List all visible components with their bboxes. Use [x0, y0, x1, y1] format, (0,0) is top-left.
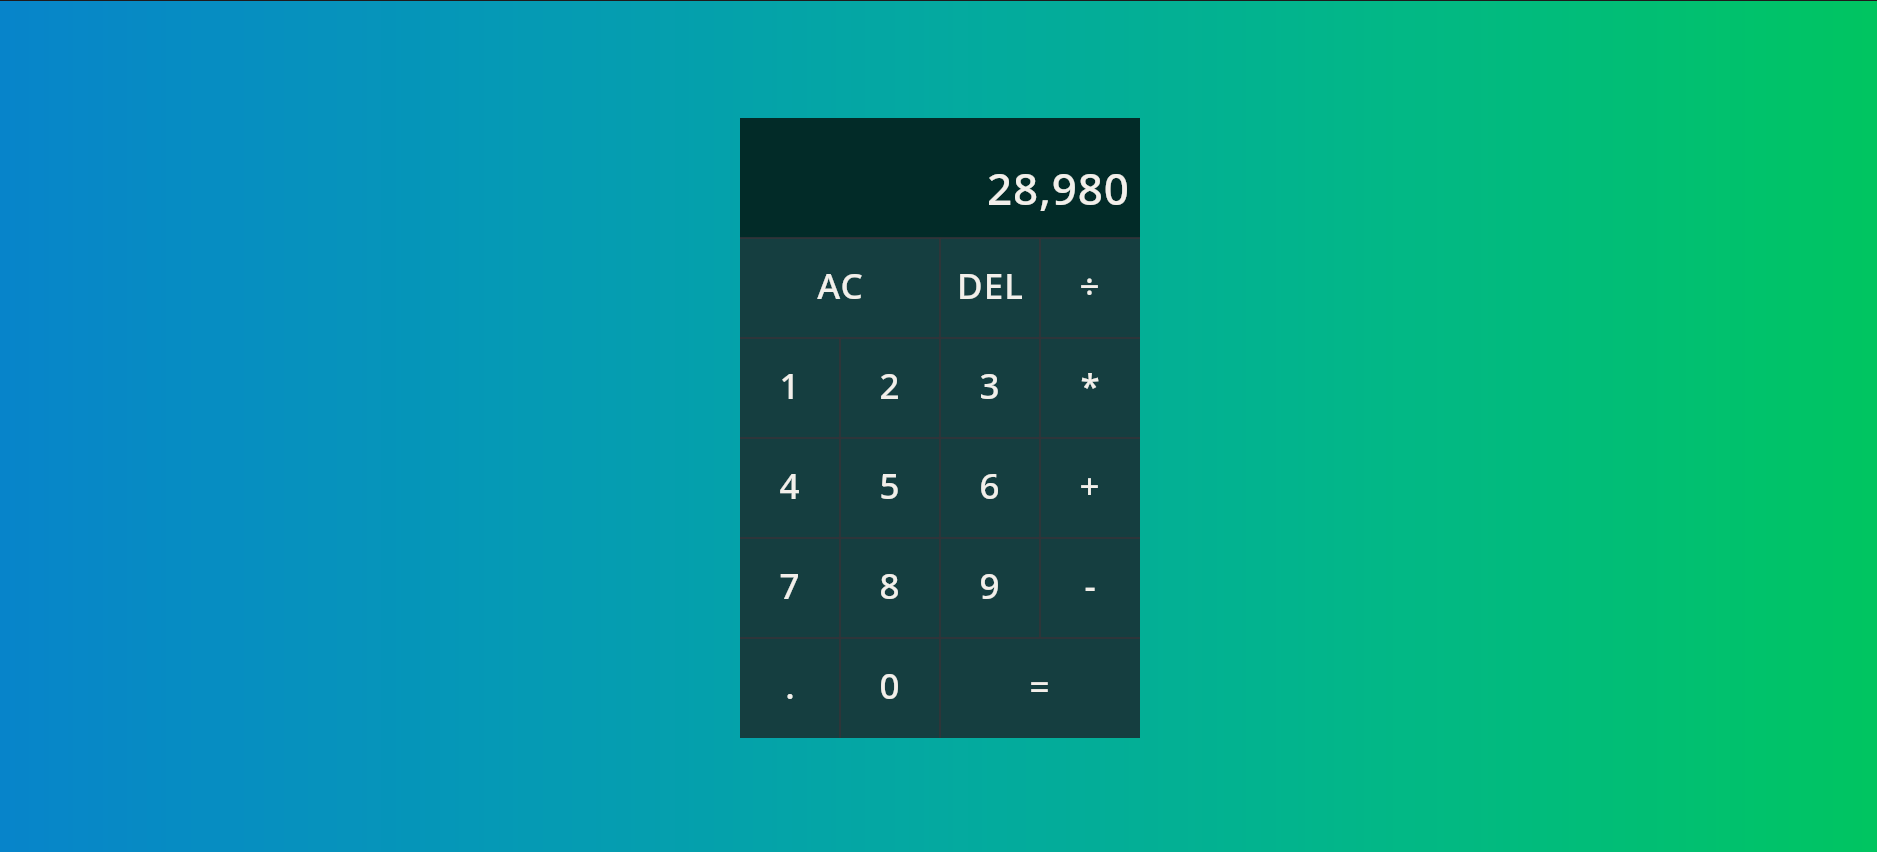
button[interactable]: Multiply — [1040, 338, 1140, 438]
staticText: 28,980 — [987, 158, 1130, 218]
staticText: . — [785, 662, 796, 710]
button[interactable]: Plus — [1040, 438, 1140, 538]
staticText: 8 — [879, 562, 901, 610]
button[interactable]: 5 — [840, 438, 940, 538]
button[interactable]: 3 — [940, 338, 1040, 438]
staticText: 0 — [879, 662, 901, 710]
button[interactable]: 2 — [840, 338, 940, 438]
staticText: 3 — [979, 362, 1001, 410]
button[interactable]: Decimal point — [740, 638, 840, 738]
button[interactable]: Minus — [1040, 538, 1140, 638]
staticText: AC — [817, 262, 864, 310]
button[interactable]: 1 — [740, 338, 840, 438]
button[interactable]: Divide — [1040, 238, 1140, 338]
button[interactable]: 0 — [840, 638, 940, 738]
button[interactable]: Equals — [940, 638, 1140, 738]
button[interactable]: 6 — [940, 438, 1040, 538]
staticText: ÷ — [1079, 262, 1101, 310]
button[interactable]: 4 — [740, 438, 840, 538]
staticText: 5 — [879, 462, 901, 510]
staticText: = — [1029, 662, 1051, 710]
staticText: * — [1080, 362, 1101, 410]
button[interactable]: 9 — [940, 538, 1040, 638]
staticText: 2 — [879, 362, 901, 410]
staticText: 6 — [979, 462, 1001, 510]
staticText: 9 — [979, 562, 1001, 610]
staticText: 7 — [779, 562, 801, 610]
button[interactable]: 8 — [840, 538, 940, 638]
button[interactable]: 7 — [740, 538, 840, 638]
staticText: DEL — [957, 262, 1024, 310]
button[interactable]: DEL — [940, 238, 1040, 338]
staticText: + — [1079, 462, 1101, 510]
staticText: 1 — [779, 362, 801, 410]
staticText: 4 — [779, 462, 801, 510]
staticText: - — [1084, 562, 1097, 610]
button[interactable]: AC — [740, 238, 940, 338]
